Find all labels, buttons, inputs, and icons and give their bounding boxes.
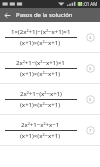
staticText: (x+1)×(x2−x+1) [20,132,61,140]
staticText: 5 [89,66,92,72]
staticText: 2x2+1−(x2−x+1) [20,90,62,98]
staticText: (x+1)×(x2−x+1) [20,101,61,109]
button[interactable]: 5 [86,64,95,73]
staticText: (x+1)×(x2−x+1) [20,70,61,78]
button[interactable]: 4 [86,33,95,42]
button[interactable]: 7 [86,126,95,135]
button[interactable]: 6 [86,95,95,104]
staticText: 2x2+1−(x2−x+1)×1 [16,59,65,67]
staticText: Pasos de la solución [16,11,73,19]
staticText: 7 [89,128,92,134]
button[interactable]: Atrás [0,8,14,22]
staticText: 2x2+1−x2+x−1 [21,121,60,129]
button[interactable]: 2x2+1−(x2−x+1)×1 [0,53,100,84]
button[interactable]: 2x2+1−x2+x−1 [0,115,100,146]
staticText: 4 [89,35,92,41]
button[interactable]: 2x2+1−(x2−x+1) [0,84,100,115]
staticText: 11:01 AM [78,1,98,7]
staticText: (x+1)×(x2−x+1) [20,39,61,47]
button[interactable]: 1×(2x2+1)−(x2−x+1)×1 [0,22,100,53]
staticText: 1×(2x2+1)−(x2−x+1)×1 [11,28,71,36]
staticText: 6 [89,97,92,103]
